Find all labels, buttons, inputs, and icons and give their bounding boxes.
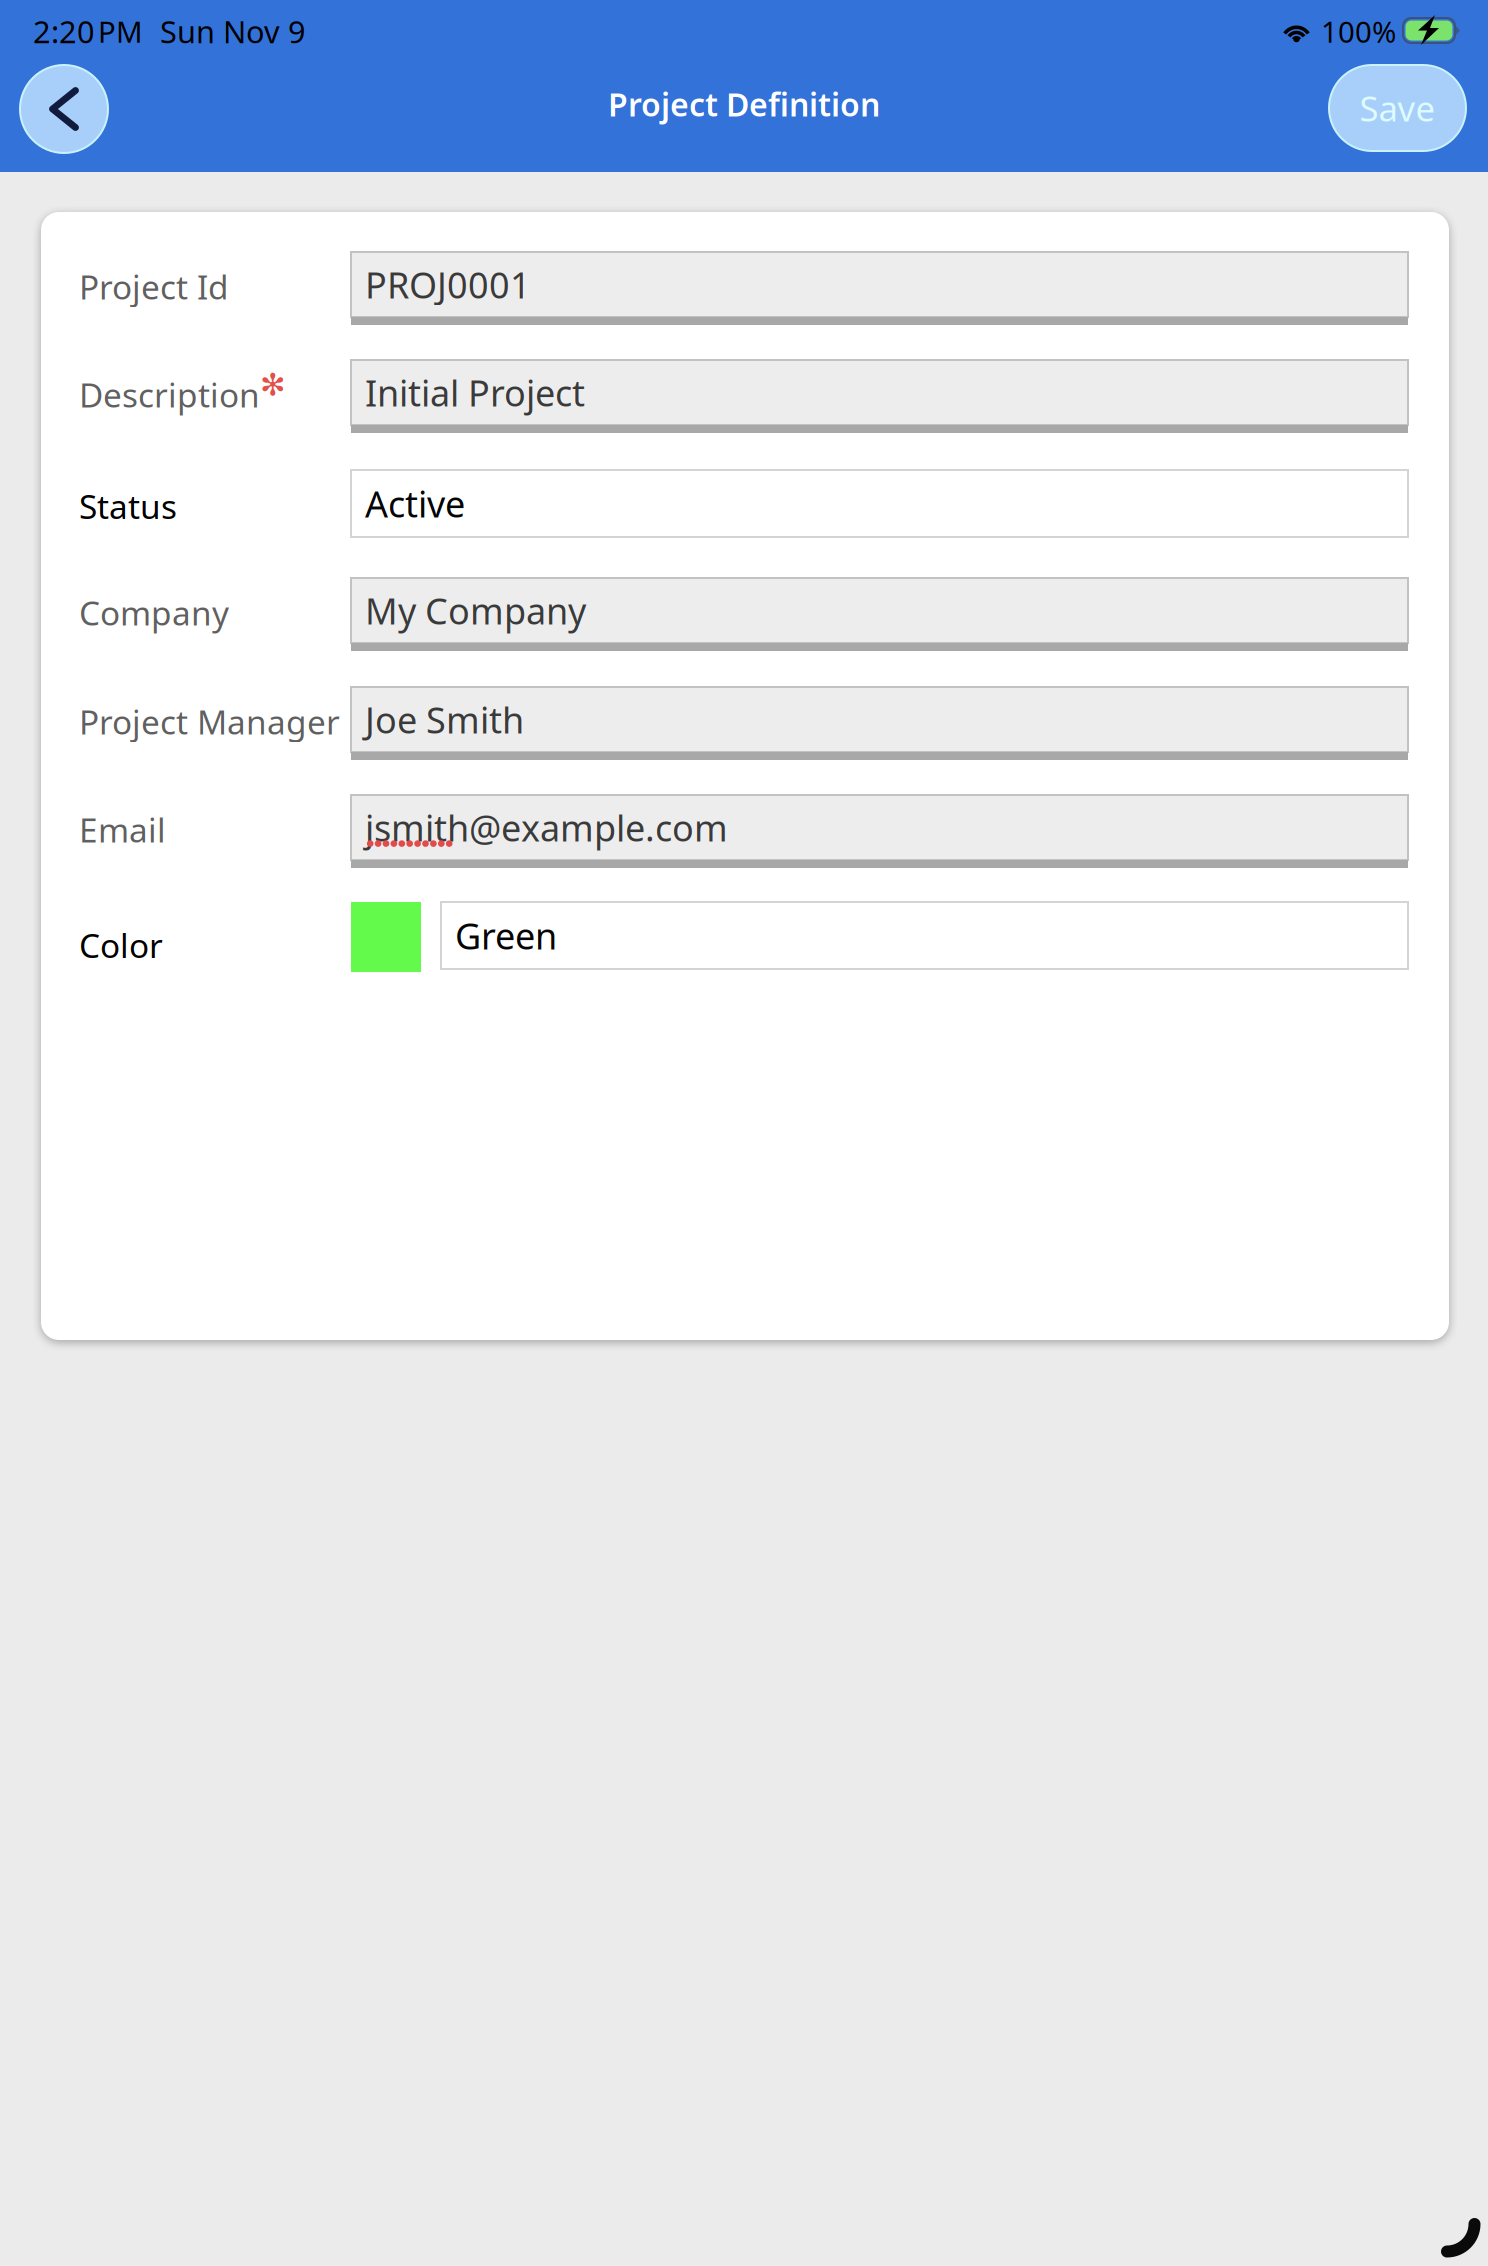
staticText: Sun Nov 9 <box>160 11 306 52</box>
staticText: Active <box>365 480 465 527</box>
staticText: Project Definition <box>608 83 880 125</box>
staticText: Project Id <box>79 264 229 309</box>
staticText: PROJ0001 <box>365 261 531 308</box>
staticText: Project Manager <box>79 699 340 744</box>
button[interactable]: Green <box>441 902 1408 969</box>
staticText: My Company <box>365 587 586 634</box>
staticText: Green <box>455 912 557 959</box>
staticText: 2:20 <box>33 11 95 52</box>
staticText: 100% <box>1321 12 1396 51</box>
staticText: jsmith@example.com <box>365 804 728 851</box>
staticText: Description <box>79 372 260 417</box>
staticText: Email <box>79 807 166 852</box>
button[interactable]: Save <box>1328 64 1467 152</box>
staticText: Status <box>79 484 177 528</box>
staticText: PM <box>98 12 143 51</box>
staticText: Save <box>1359 85 1435 131</box>
button[interactable]: Back <box>16 61 112 157</box>
staticText: ✻ <box>260 367 286 402</box>
button[interactable]: Active <box>351 470 1408 537</box>
staticText: Company <box>79 590 229 635</box>
staticText: Color <box>79 923 163 967</box>
staticText: Initial Project <box>365 369 585 416</box>
staticText: Joe Smith <box>365 696 524 743</box>
